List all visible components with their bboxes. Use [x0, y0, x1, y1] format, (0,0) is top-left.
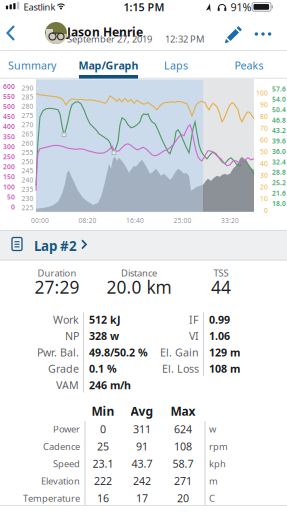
- staticText: 50: [260, 147, 268, 156]
- staticText: C: [209, 492, 215, 504]
- staticText: 80: [260, 112, 268, 121]
- staticText: 250: [21, 157, 33, 166]
- staticText: Lap #2: [34, 237, 77, 255]
- staticText: 235: [21, 185, 33, 194]
- staticText: 290: [21, 83, 33, 92]
- staticText: 246 m/h: [89, 378, 131, 392]
- staticText: September 27, 2019: [67, 33, 152, 45]
- staticText: 21.6: [272, 189, 286, 198]
- staticText: 91: [136, 439, 148, 453]
- staticText: 245: [21, 166, 33, 175]
- button[interactable]: Summary: [0, 53, 64, 77]
- staticText: 20: [177, 491, 189, 505]
- staticText: El. Gain: [160, 345, 199, 359]
- staticText: 271: [174, 474, 192, 488]
- staticText: Max: [170, 403, 195, 419]
- staticText: Min: [91, 403, 114, 419]
- staticText: 36.0: [272, 147, 286, 156]
- staticText: 400: [3, 122, 15, 131]
- staticText: 129 m: [209, 345, 240, 359]
- staticText: Temperature: [23, 492, 80, 504]
- staticText: 20: [260, 182, 268, 191]
- button[interactable]: Back: [0, 20, 22, 46]
- staticText: w: [209, 423, 216, 435]
- staticText: 18.0: [272, 199, 286, 208]
- staticText: 1:15 PM: [123, 0, 164, 14]
- staticText: Grade: [48, 362, 79, 376]
- staticText: 108: [174, 439, 192, 453]
- staticText: 311: [133, 422, 151, 436]
- staticText: 0: [100, 422, 106, 436]
- staticText: 27:29: [34, 275, 79, 298]
- button[interactable]: Lap #2: [0, 230, 287, 260]
- button[interactable]: Edit: [222, 21, 246, 45]
- staticText: Eastlink: [23, 1, 55, 13]
- staticText: 0: [264, 206, 268, 215]
- staticText: Jason Henrie: [67, 24, 143, 40]
- staticText: 0.99: [209, 312, 230, 327]
- staticText: 1.06: [209, 329, 230, 343]
- staticText: kph: [209, 457, 226, 470]
- staticText: 16:40: [126, 216, 144, 225]
- staticText: 230: [21, 194, 33, 203]
- staticText: Pwr. Bal.: [37, 345, 79, 359]
- staticText: 222: [94, 474, 112, 488]
- staticText: 275: [21, 111, 33, 120]
- staticText: 57.6: [272, 84, 286, 93]
- staticText: rpm: [209, 440, 228, 452]
- staticText: Speed: [53, 457, 80, 470]
- staticText: 58.7: [172, 456, 193, 471]
- staticText: 25: [97, 439, 109, 453]
- staticText: NP: [65, 329, 79, 343]
- staticText: 265: [21, 129, 33, 138]
- staticText: 20.0 km: [106, 275, 171, 298]
- staticText: 60: [260, 135, 268, 144]
- staticText: Map/Graph: [78, 58, 138, 72]
- staticText: 285: [21, 93, 33, 101]
- staticText: 25:00: [173, 216, 191, 225]
- staticText: 108 m: [209, 362, 240, 376]
- button[interactable]: Map/Graph: [73, 53, 143, 77]
- staticText: 350: [3, 132, 15, 141]
- staticText: 240: [21, 176, 33, 184]
- staticText: 150: [3, 172, 15, 181]
- staticText: 39.6: [272, 136, 286, 145]
- staticText: 40: [260, 159, 268, 168]
- staticText: 46.8: [272, 116, 286, 125]
- staticText: 70: [260, 124, 268, 132]
- staticText: TSS: [213, 267, 228, 279]
- staticText: El. Loss: [162, 362, 199, 376]
- staticText: 90: [260, 100, 268, 109]
- staticText: 17: [136, 491, 148, 505]
- staticText: Laps: [164, 58, 188, 72]
- staticText: 280: [21, 102, 33, 111]
- staticText: 300: [3, 142, 15, 151]
- staticText: 0.1 %: [89, 362, 117, 376]
- staticText: 328 w: [89, 329, 119, 343]
- staticText: 512 kJ: [89, 312, 121, 327]
- staticText: 44: [211, 275, 231, 298]
- staticText: 100: [256, 88, 268, 97]
- staticText: Distance: [121, 267, 157, 279]
- staticText: m: [209, 475, 218, 487]
- staticText: 255: [21, 148, 33, 157]
- staticText: 91%: [230, 0, 251, 14]
- staticText: 16: [97, 491, 109, 505]
- staticText: 260: [21, 139, 33, 148]
- staticText: Summary: [8, 58, 56, 72]
- staticText: Peaks: [234, 58, 263, 72]
- staticText: 00:00: [31, 216, 49, 225]
- staticText: 10: [260, 194, 268, 203]
- button[interactable]: Peaks: [224, 53, 274, 77]
- staticText: 32.4: [272, 157, 286, 166]
- staticText: 30: [260, 171, 268, 179]
- staticText: VAM: [56, 378, 79, 392]
- staticText: 270: [21, 120, 33, 129]
- button[interactable]: Laps: [151, 53, 201, 77]
- staticText: 23.1: [92, 456, 113, 471]
- button[interactable]: More: [250, 24, 276, 44]
- staticText: 25.2: [272, 178, 286, 187]
- staticText: 225: [21, 203, 33, 212]
- staticText: Duration: [37, 267, 76, 279]
- staticText: 50: [7, 192, 15, 201]
